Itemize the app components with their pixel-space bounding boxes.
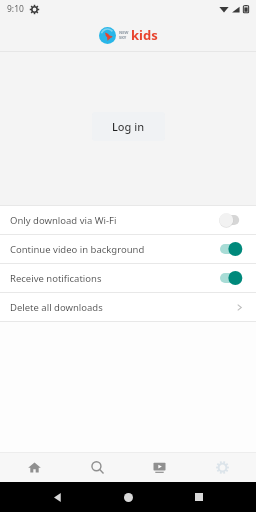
button[interactable]: Home	[6, 452, 62, 482]
button[interactable]: Library	[131, 452, 187, 482]
button[interactable]: Recents	[186, 484, 212, 510]
button[interactable]: Only download via Wi-Fi	[0, 206, 256, 234]
staticText: kids	[131, 26, 158, 44]
button[interactable]: Continue video in background	[0, 235, 256, 263]
button[interactable]: Delete all downloads	[0, 293, 256, 321]
button[interactable]: Receive notifications	[0, 264, 256, 292]
staticText: Continue video in background	[10, 243, 220, 256]
staticText: NEW	[119, 30, 129, 35]
staticText: 9:10	[7, 3, 24, 15]
staticText: SKY	[119, 35, 127, 40]
button[interactable]: Back	[45, 484, 71, 510]
button[interactable]: Home	[115, 484, 141, 510]
button[interactable]: Log in	[92, 112, 165, 141]
staticText: Delete all downloads	[10, 301, 235, 314]
staticText: Log in	[112, 119, 145, 134]
staticText: Only download via Wi-Fi	[10, 214, 220, 227]
button[interactable]: Settings	[194, 452, 250, 482]
button[interactable]: Search	[69, 452, 125, 482]
staticText: Receive notifications	[10, 272, 220, 285]
